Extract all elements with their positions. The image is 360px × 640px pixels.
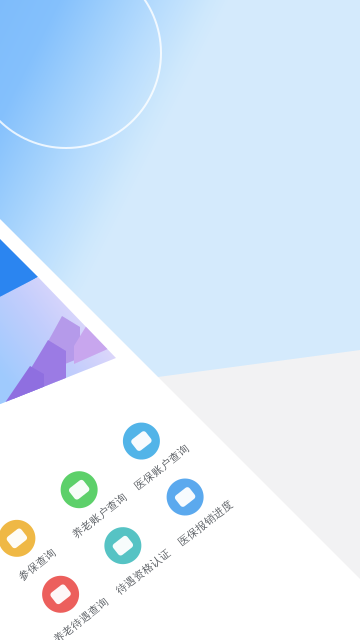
staticText: 养老待遇查询 xyxy=(0,577,61,590)
button[interactable]: 医保报销进度 xyxy=(147,526,226,597)
button[interactable]: 养老待遇查询 xyxy=(0,526,68,597)
staticText: 待遇资格认证 xyxy=(74,577,140,590)
staticText: 养老账户查询 xyxy=(74,506,140,519)
button[interactable]: 养老账户查询 xyxy=(68,455,147,526)
button[interactable]: 参保查询 xyxy=(0,455,68,526)
button[interactable]: 医保账户查询 xyxy=(147,455,226,526)
staticText: 医保账户查询 xyxy=(153,506,219,519)
button[interactable]: 待遇资格认证 xyxy=(68,526,147,597)
